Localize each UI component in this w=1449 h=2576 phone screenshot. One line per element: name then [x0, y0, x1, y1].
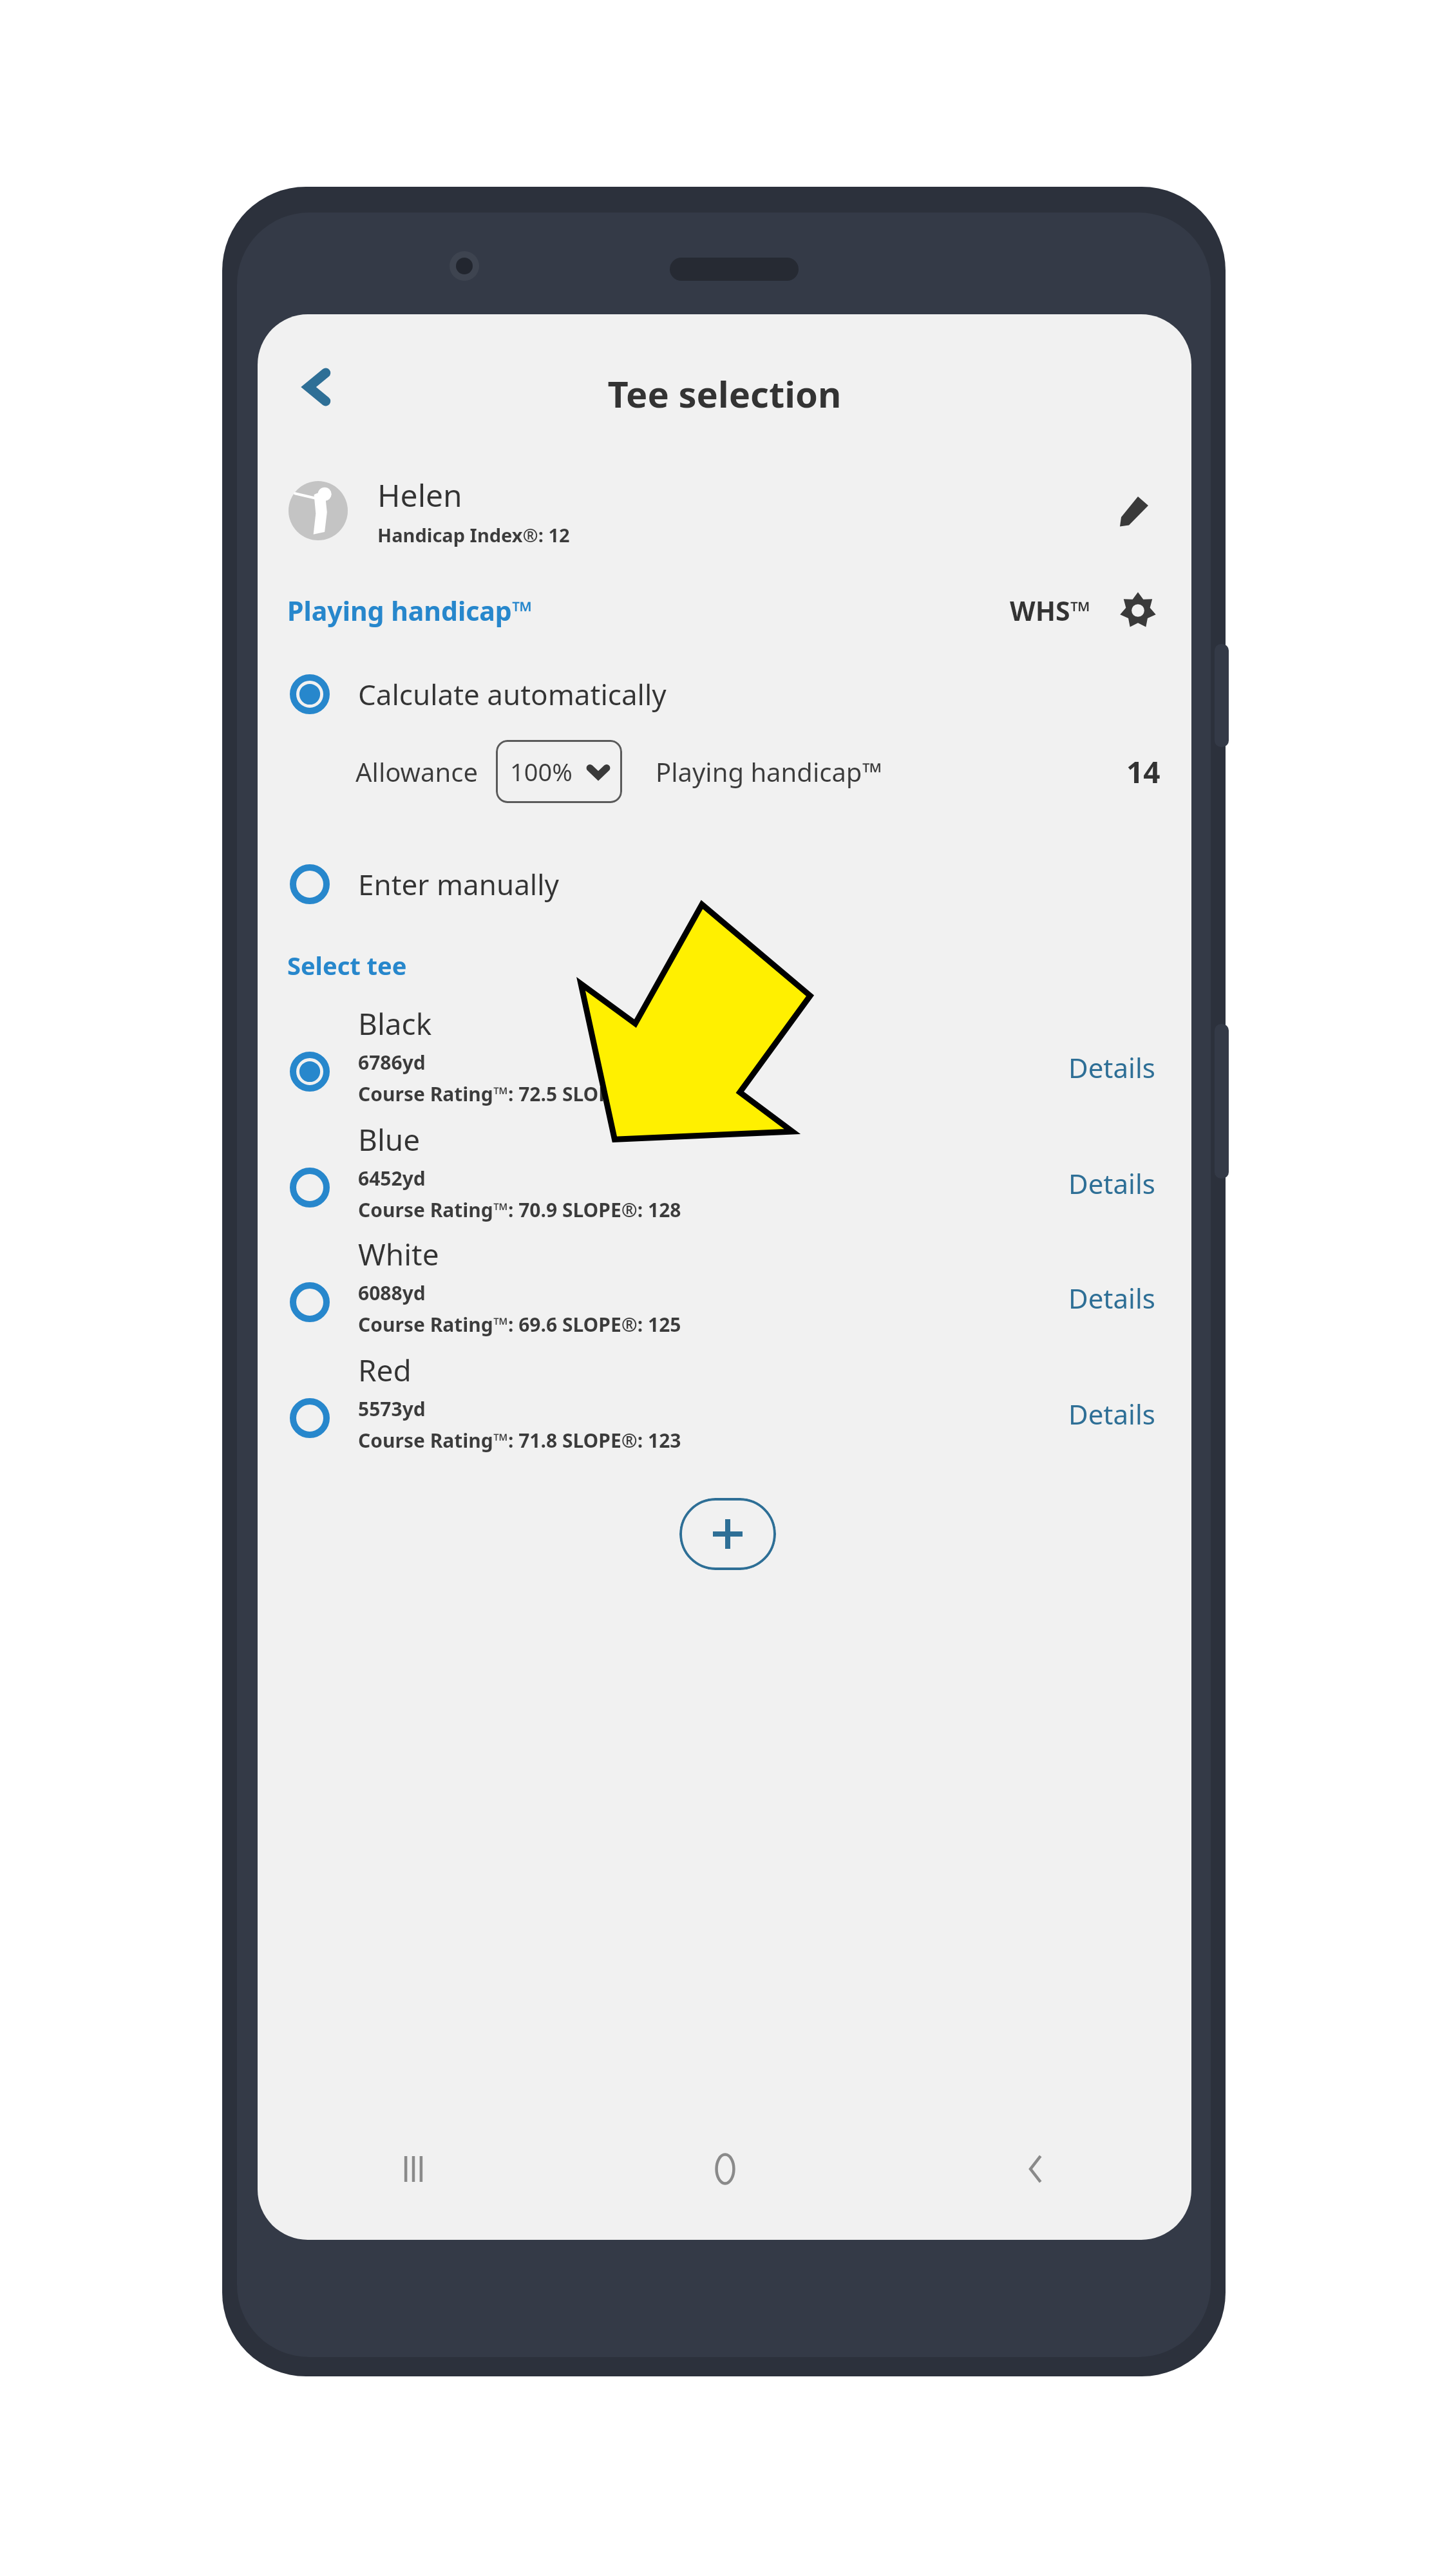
staticText: Helen: [377, 474, 462, 516]
staticText: Course Rating™: 69.6 SLOPE®: 125: [358, 1311, 681, 1338]
button[interactable]: Calculate automatically: [258, 659, 1191, 730]
button[interactable]: Details: [1063, 1389, 1160, 1439]
staticText: Red: [358, 1350, 412, 1390]
button[interactable]: Recents: [258, 2117, 569, 2221]
button[interactable]: Details: [1063, 1043, 1160, 1092]
staticText: Calculate automatically: [358, 675, 667, 714]
staticText: White: [358, 1234, 439, 1274]
button[interactable]: Add tee: [679, 1498, 776, 1570]
staticText: Course Rating™: 71.8 SLOPE®: 123: [358, 1427, 681, 1454]
staticText: 6786yd: [358, 1049, 426, 1075]
button[interactable]: Details: [1063, 1159, 1160, 1208]
staticText: Blue: [358, 1119, 421, 1160]
button[interactable]: Back: [282, 352, 353, 422]
staticText: Select tee: [287, 949, 407, 982]
staticText: Playing handicap™: [287, 592, 533, 629]
button[interactable]: 100%: [496, 740, 622, 803]
button[interactable]: Helen: [258, 462, 1191, 559]
staticText: 6452yd: [358, 1165, 426, 1191]
button[interactable]: Home: [569, 2117, 880, 2221]
staticText: 5573yd: [358, 1396, 426, 1422]
staticText: Allowance: [355, 754, 478, 789]
button[interactable]: Black: [258, 1003, 1191, 1116]
staticText: Playing handicap™: [656, 754, 882, 789]
button[interactable]: Back: [880, 2117, 1191, 2221]
staticText: Details: [1068, 1165, 1155, 1202]
staticText: Tee selection: [258, 369, 1191, 418]
button[interactable]: Blue: [258, 1119, 1191, 1232]
staticText: Course Rating™: 70.9 SLOPE®: 128: [358, 1197, 681, 1223]
staticText: Details: [1068, 1280, 1155, 1316]
button[interactable]: Enter manually: [258, 849, 1191, 920]
staticText: 14: [1126, 752, 1160, 792]
staticText: WHS™: [1010, 592, 1091, 629]
button[interactable]: White: [258, 1234, 1191, 1347]
button[interactable]: WHS settings: [1109, 582, 1167, 639]
staticText: Enter manually: [358, 865, 560, 904]
staticText: 6088yd: [358, 1280, 426, 1306]
button[interactable]: Red: [258, 1350, 1191, 1463]
staticText: Course Rating™: 72.5 SLOPE®: 131: [358, 1081, 681, 1107]
button[interactable]: Details: [1063, 1273, 1160, 1323]
staticText: Details: [1068, 1396, 1155, 1432]
staticText: Details: [1068, 1049, 1155, 1086]
staticText: 100%: [510, 755, 573, 788]
staticText: Black: [358, 1003, 432, 1044]
staticText: Handicap Index®: 12: [377, 522, 570, 547]
button[interactable]: Edit player: [1099, 475, 1170, 546]
